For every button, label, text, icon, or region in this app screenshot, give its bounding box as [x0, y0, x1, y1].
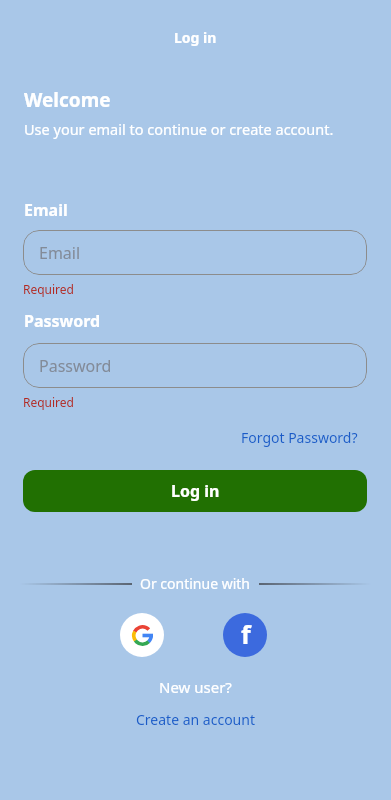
- staticText: Required: [23, 394, 74, 410]
- staticText: Email: [39, 242, 81, 264]
- staticText: Email: [24, 199, 68, 221]
- staticText: Log in: [171, 480, 220, 502]
- staticText: Password: [24, 310, 101, 332]
- staticText: Log in: [174, 28, 217, 47]
- button[interactable]: Email: [23, 230, 367, 275]
- staticText: Welcome: [24, 87, 111, 113]
- button[interactable]: Log in: [23, 470, 367, 512]
- button[interactable]: Forgot Password?: [241, 428, 358, 447]
- staticText: Password: [39, 355, 112, 377]
- button[interactable]: Password: [23, 343, 367, 388]
- staticText: f: [241, 617, 251, 651]
- button[interactable]: [120, 613, 164, 657]
- staticText: New user?: [159, 677, 232, 697]
- button[interactable]: Create an account: [136, 710, 255, 729]
- button[interactable]: f: [223, 613, 267, 657]
- staticText: Required: [23, 281, 74, 297]
- staticText: Or continue with: [140, 574, 251, 593]
- staticText: Use your email to continue or create acc…: [24, 119, 334, 139]
